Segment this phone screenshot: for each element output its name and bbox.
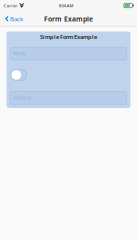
staticText: Carrier bbox=[4, 3, 18, 8]
button[interactable]: Back bbox=[0, 11, 27, 26]
staticText: 8:54 AM bbox=[58, 3, 73, 8]
staticText: Simple Form Example bbox=[40, 33, 97, 41]
staticText: Address bbox=[13, 95, 31, 101]
staticText: Form Example bbox=[44, 14, 93, 23]
staticText: Back bbox=[10, 15, 23, 23]
staticText: Name bbox=[13, 50, 26, 57]
button[interactable]: Switch bbox=[11, 69, 27, 80]
